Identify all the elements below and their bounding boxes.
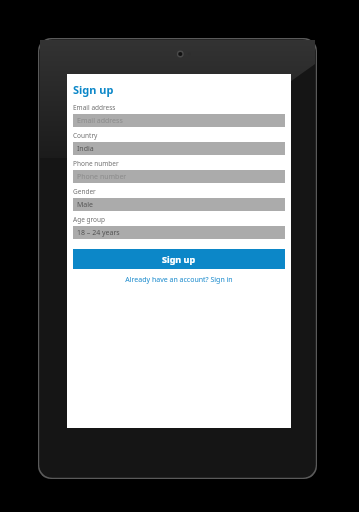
staticText: Age group bbox=[73, 215, 106, 224]
button[interactable]: Phone number bbox=[73, 170, 285, 183]
staticText: Email address bbox=[77, 116, 123, 126]
button[interactable]: Sign up bbox=[73, 249, 285, 269]
staticText: Already have an account? Sign in bbox=[125, 275, 233, 285]
staticText: Gender bbox=[73, 187, 96, 196]
staticText: Country bbox=[73, 131, 98, 140]
staticText: Phone number bbox=[73, 159, 119, 168]
button[interactable]: Male bbox=[73, 198, 285, 211]
button[interactable]: Already have an account? Sign in bbox=[73, 273, 285, 287]
staticText: Sign up bbox=[162, 253, 196, 265]
staticText: India bbox=[77, 144, 94, 154]
button[interactable]: India bbox=[73, 142, 285, 155]
staticText: 18 – 24 years bbox=[77, 228, 120, 238]
staticText: Sign up bbox=[73, 82, 114, 97]
staticText: Phone number bbox=[77, 172, 127, 182]
button[interactable]: Email address bbox=[73, 114, 285, 127]
button[interactable]: 18 – 24 years bbox=[73, 226, 285, 239]
staticText: Male bbox=[77, 200, 94, 210]
staticText: Email address bbox=[73, 103, 116, 112]
